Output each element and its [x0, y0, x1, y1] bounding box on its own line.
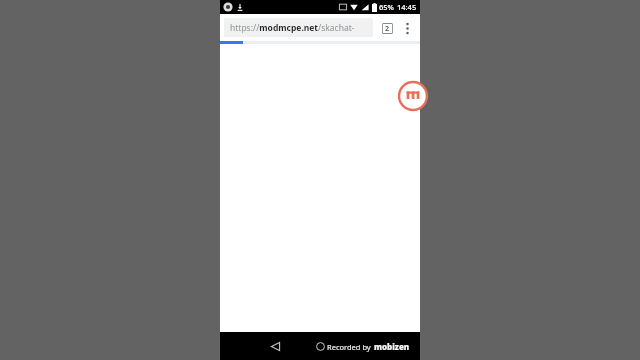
- button[interactable]: Tabs, 2 open: [378, 19, 396, 37]
- button[interactable]: Back: [264, 335, 286, 357]
- staticText: Recorded by: [327, 342, 371, 352]
- staticText: https://modmcpe.net/skachat-min: [230, 22, 367, 34]
- staticText: 2: [385, 24, 390, 34]
- button[interactable]: https://modmcpe.net/skachat-min: [224, 18, 373, 37]
- staticText: 65%: [379, 2, 394, 12]
- button[interactable]: Mobizen recorder: [398, 81, 428, 111]
- staticText: mobizen: [374, 341, 410, 352]
- button[interactable]: More options: [398, 19, 416, 37]
- staticText: 14:45: [397, 2, 417, 12]
